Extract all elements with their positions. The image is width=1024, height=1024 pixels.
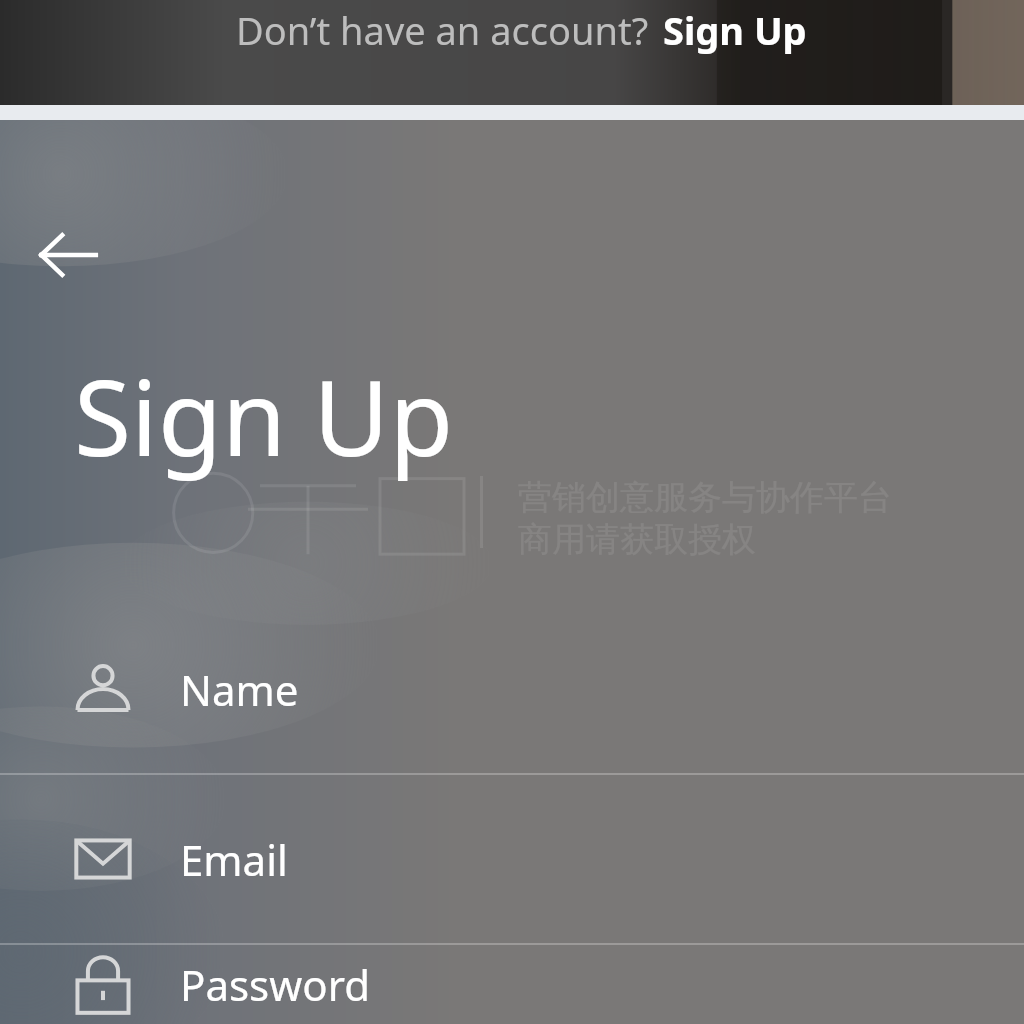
button[interactable]: Email: [0, 775, 1024, 943]
staticText: Sign Up: [74, 345, 454, 487]
staticText: Name: [180, 661, 299, 718]
button[interactable]: Password: [0, 945, 1024, 1024]
button[interactable]: Name: [0, 605, 1024, 773]
button[interactable]: Back: [20, 207, 116, 303]
button[interactable]: Don’t have an account?: [236, 4, 807, 56]
staticText: Password: [180, 956, 370, 1013]
staticText: Email: [180, 831, 288, 888]
staticText: 商用请获取授权: [518, 518, 756, 561]
staticText: 营销创意服务与协作平台: [518, 476, 892, 519]
staticText: Sign Up: [663, 4, 807, 56]
staticText: Don’t have an account?: [236, 4, 649, 56]
